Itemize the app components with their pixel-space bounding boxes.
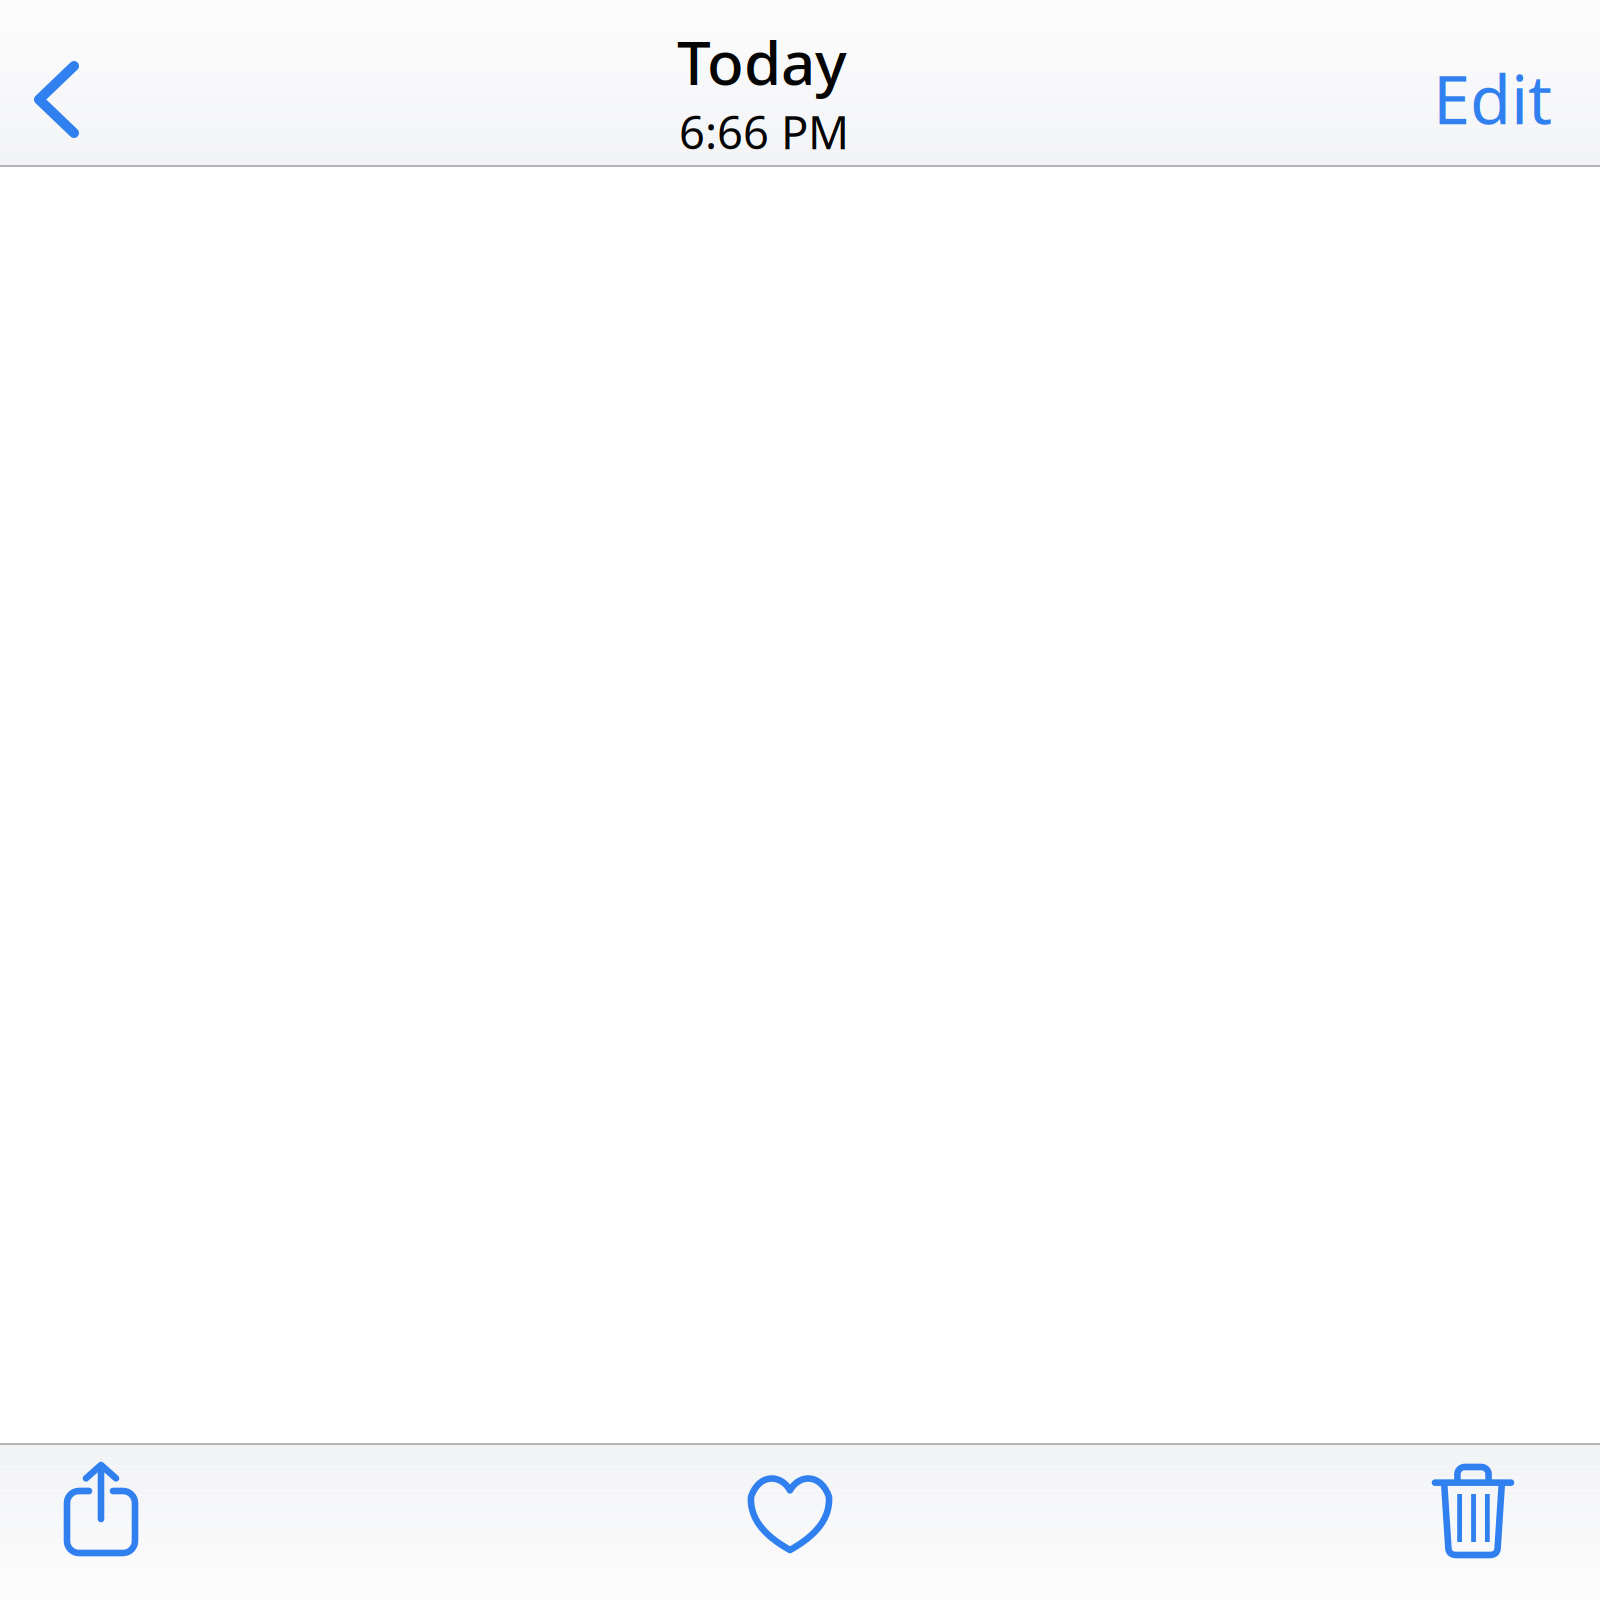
button[interactable]: Delete	[1409, 1445, 1537, 1577]
button[interactable]: Back	[14, 42, 109, 157]
button[interactable]: Favourite	[725, 1447, 855, 1576]
button[interactable]: Edit	[1407, 36, 1578, 160]
staticText: Today	[677, 22, 847, 102]
button[interactable]: Share	[46, 1444, 156, 1574]
staticText: 6:66 PM	[679, 102, 849, 162]
staticText: Edit	[1433, 54, 1552, 142]
